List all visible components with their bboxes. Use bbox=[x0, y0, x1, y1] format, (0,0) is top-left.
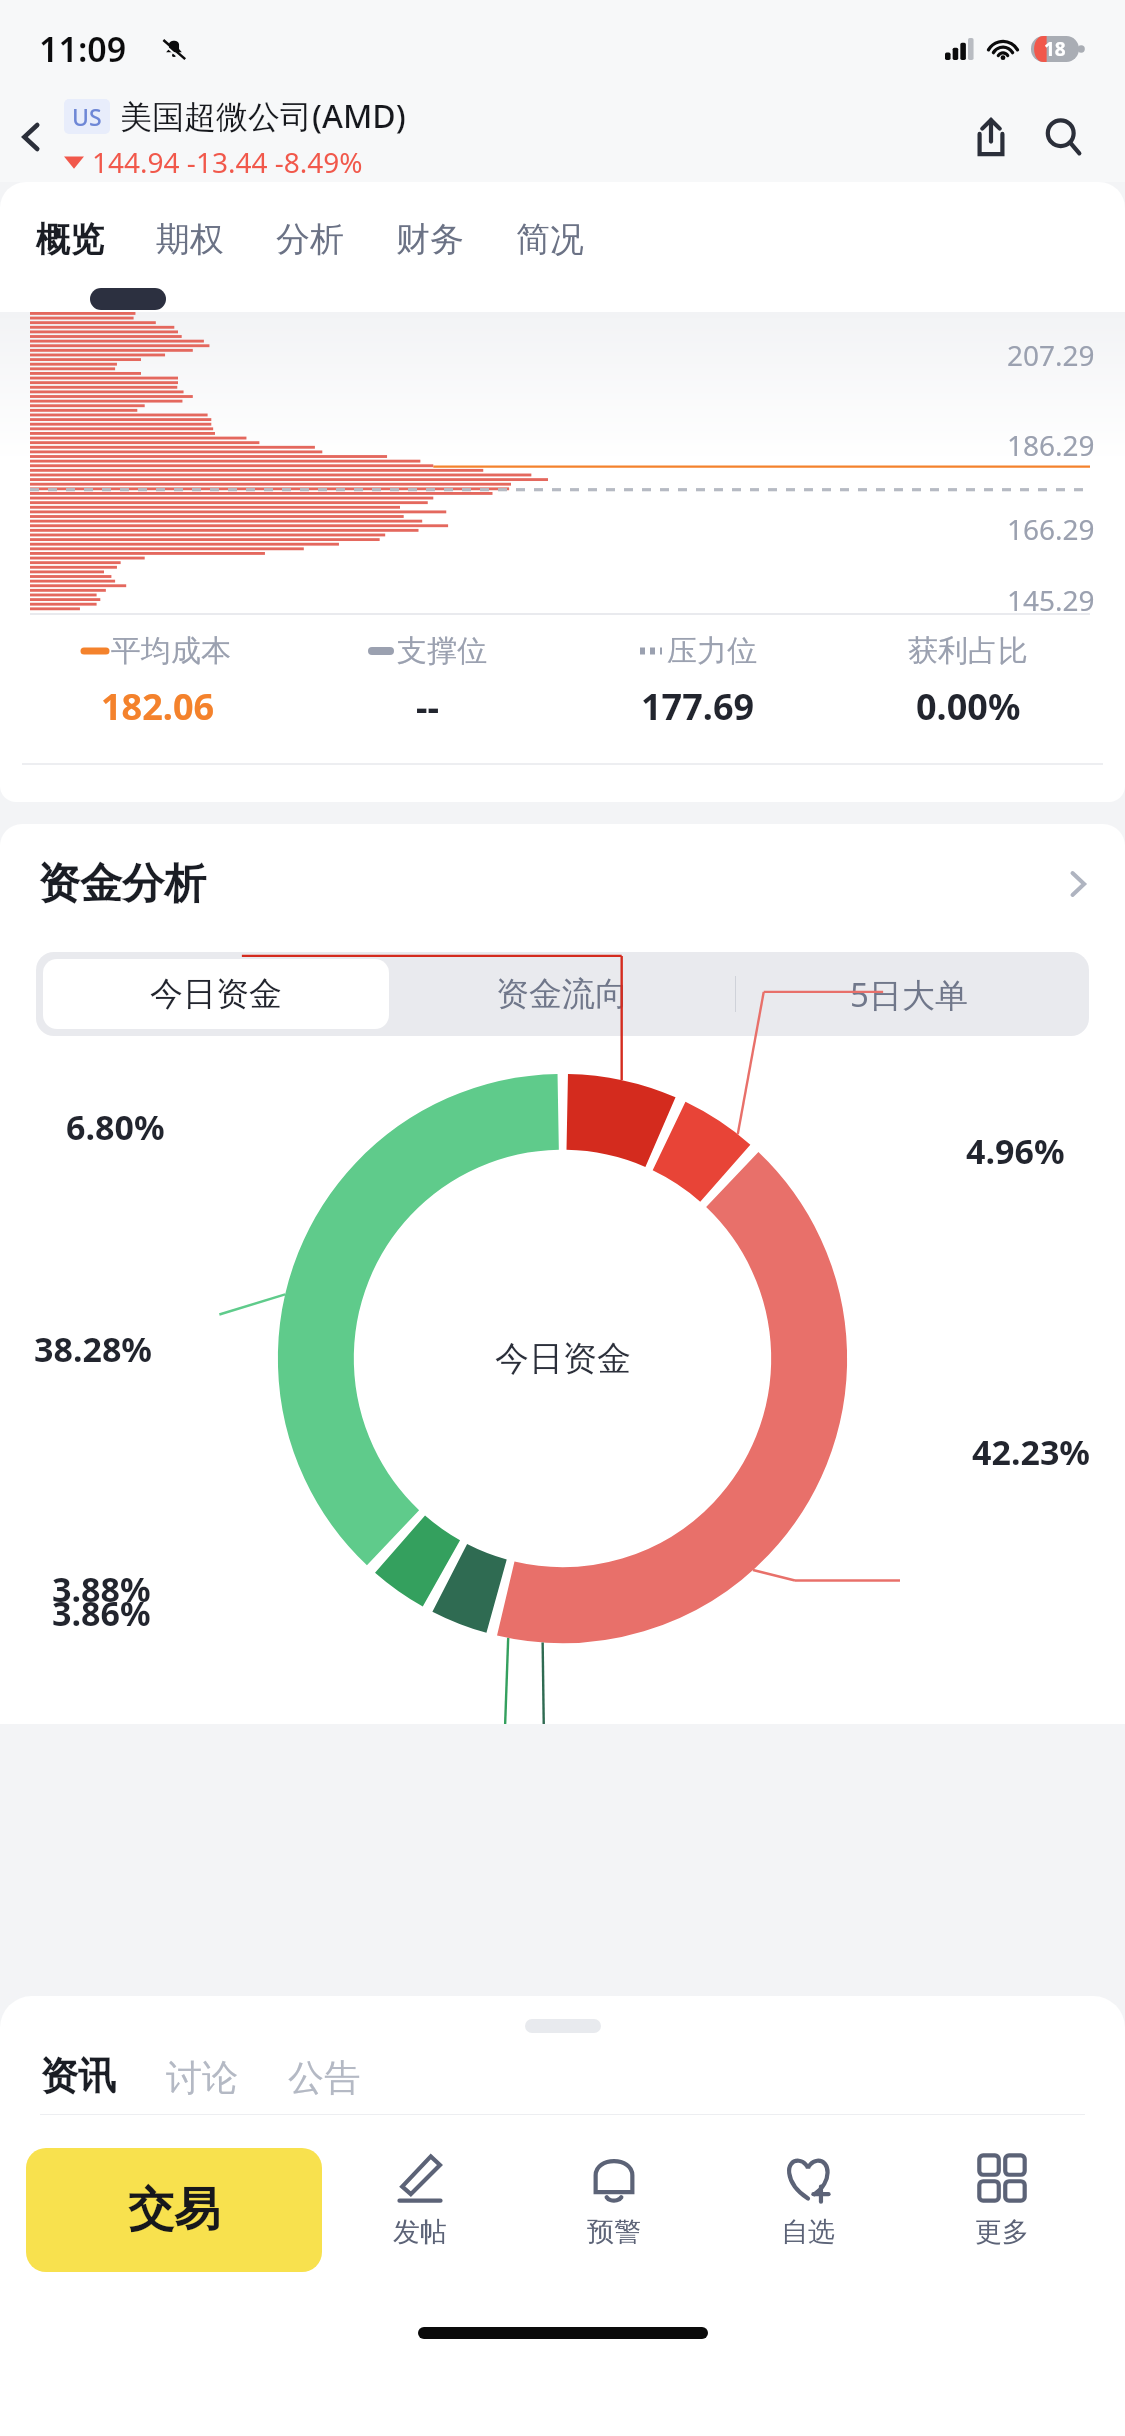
staticText: 期权 bbox=[156, 218, 224, 261]
button[interactable]: 预警 bbox=[517, 2115, 711, 2305]
staticText: 144.94 -13.44 -8.49% bbox=[92, 143, 363, 181]
staticText: 自选 bbox=[781, 2215, 835, 2249]
button[interactable]: 公告 bbox=[288, 2055, 410, 2100]
staticText: 公告 bbox=[288, 2055, 360, 2100]
staticText: 今日资金 bbox=[495, 1337, 631, 1380]
staticText: 资讯 bbox=[40, 2052, 116, 2100]
button[interactable]: 自选 bbox=[711, 2115, 905, 2305]
button[interactable]: 分析 bbox=[276, 218, 396, 261]
staticText: 资金流向 bbox=[496, 973, 628, 1015]
staticText: 207.29 bbox=[1007, 336, 1095, 374]
staticText: 分析 bbox=[276, 218, 344, 261]
button[interactable]: 平均成本 bbox=[22, 632, 293, 731]
staticText: 3.88% bbox=[52, 1566, 151, 1612]
staticText: 0.00% bbox=[916, 682, 1021, 731]
button[interactable]: 资金分析 bbox=[0, 824, 1125, 944]
button[interactable]: 资金流向 bbox=[389, 959, 735, 1029]
button[interactable]: 5日大单 bbox=[736, 959, 1082, 1029]
staticText: 更多 bbox=[975, 2215, 1029, 2249]
staticText: 简况 bbox=[516, 218, 584, 261]
staticText: 财务 bbox=[396, 218, 464, 261]
staticText: 压力位 bbox=[667, 632, 757, 670]
staticText: 3.86% bbox=[52, 1590, 151, 1636]
button[interactable]: 期权 bbox=[156, 218, 276, 261]
staticText: 平均成本 bbox=[111, 632, 231, 670]
staticText: 38.28% bbox=[34, 1326, 153, 1372]
staticText: 交易 bbox=[128, 2181, 220, 2239]
button[interactable]: Back bbox=[0, 105, 64, 169]
staticText: 42.23% bbox=[972, 1429, 1091, 1475]
staticText: 11:09 bbox=[39, 26, 127, 72]
button[interactable]: 今日资金 bbox=[43, 959, 389, 1029]
staticText: -- bbox=[416, 682, 440, 731]
staticText: 概览 bbox=[36, 218, 104, 261]
button[interactable]: 交易 bbox=[26, 2148, 322, 2272]
button[interactable]: Search bbox=[1027, 101, 1099, 173]
staticText: 预警 bbox=[587, 2215, 641, 2249]
staticText: 发帖 bbox=[393, 2215, 447, 2249]
staticText: 145.29 bbox=[1007, 581, 1095, 619]
staticText: 6.80% bbox=[66, 1104, 165, 1150]
staticText: 讨论 bbox=[166, 2055, 238, 2100]
button[interactable]: 概览 bbox=[36, 218, 156, 261]
staticText: 18 bbox=[1044, 36, 1066, 62]
staticText: 177.69 bbox=[641, 682, 755, 731]
staticText: 186.29 bbox=[1007, 426, 1095, 464]
button[interactable]: 资讯 bbox=[40, 2052, 166, 2100]
staticText: 资金分析 bbox=[38, 858, 206, 911]
staticText: 获利占比 bbox=[908, 632, 1028, 670]
staticText: 5日大单 bbox=[850, 972, 968, 1017]
staticText: 182.06 bbox=[101, 682, 215, 731]
button[interactable]: Share bbox=[955, 101, 1027, 173]
staticText: 4.96% bbox=[966, 1128, 1065, 1174]
staticText: US bbox=[72, 101, 102, 132]
button[interactable]: 简况 bbox=[516, 218, 636, 261]
button[interactable]: 支撑位 bbox=[293, 632, 563, 731]
button[interactable]: 更多 bbox=[905, 2115, 1099, 2305]
staticText: 美国超微公司(AMD) bbox=[120, 94, 406, 138]
button[interactable]: 财务 bbox=[396, 218, 516, 261]
staticText: 支撑位 bbox=[397, 632, 487, 670]
button[interactable]: 压力位 bbox=[563, 632, 833, 731]
staticText: 166.29 bbox=[1007, 510, 1095, 548]
button[interactable]: 发帖 bbox=[322, 2115, 517, 2305]
button[interactable]: 获利占比 bbox=[833, 632, 1103, 731]
staticText: 今日资金 bbox=[150, 973, 282, 1015]
button[interactable]: 讨论 bbox=[166, 2055, 288, 2100]
